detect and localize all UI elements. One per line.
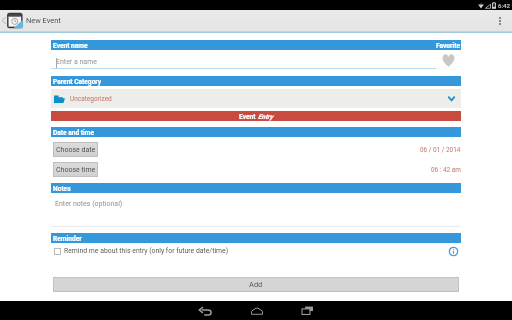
staticText: Remind me about this entry (only for fut… xyxy=(64,247,229,255)
staticText: Reminder xyxy=(53,235,82,243)
staticText: New Event xyxy=(26,16,61,25)
staticText: Choose date xyxy=(56,146,96,154)
button[interactable]: Add xyxy=(53,277,459,292)
staticText: Notes xyxy=(53,185,71,193)
staticText: Date and time xyxy=(53,129,95,137)
staticText: Uncategorized xyxy=(70,95,112,103)
button[interactable]: Recent apps xyxy=(282,301,333,320)
button[interactable]: Information xyxy=(448,246,459,257)
button[interactable]: Home xyxy=(231,301,282,320)
staticText: 06 / 01 / 2014 xyxy=(420,146,461,154)
staticText: Enter notes (optional) xyxy=(55,200,123,208)
button[interactable]: More options xyxy=(488,10,512,31)
staticText: 6:42 xyxy=(498,2,510,9)
button[interactable]: Choose date xyxy=(53,142,98,157)
staticText: Parent Category xyxy=(53,78,102,86)
staticText: Enter a name xyxy=(56,58,98,66)
staticText: Choose time xyxy=(56,166,96,174)
staticText: Add xyxy=(249,280,263,289)
staticText: Event xyxy=(239,113,258,121)
button[interactable]: Back xyxy=(180,301,231,320)
button[interactable]: Choose time xyxy=(53,162,98,177)
staticText: Favorite xyxy=(436,42,460,50)
button[interactable]: Favorite xyxy=(442,54,455,67)
button[interactable]: Remind me about this entry (only for fut… xyxy=(51,247,229,255)
staticText: Event name xyxy=(53,42,88,50)
staticText: 06 : 42 am xyxy=(431,166,461,174)
staticText: Entry xyxy=(258,113,273,121)
button[interactable]: Uncategorized xyxy=(51,89,461,108)
button[interactable]: Navigate up xyxy=(0,10,26,31)
